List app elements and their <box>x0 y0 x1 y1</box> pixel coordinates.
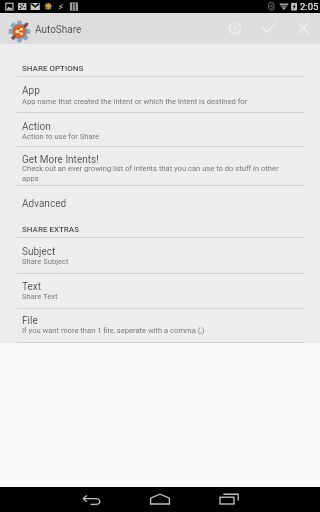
staticText: 2:05 <box>300 1 319 12</box>
staticText: Share Text <box>22 292 58 301</box>
button[interactable]: Home <box>136 487 184 512</box>
button[interactable]: Close <box>288 13 318 44</box>
button[interactable]: Action <box>0 113 320 146</box>
staticText: App <box>22 85 40 97</box>
staticText: Share Subject <box>22 257 69 266</box>
staticText: AutoShare <box>35 24 82 36</box>
staticText: File <box>22 315 38 327</box>
button[interactable]: App <box>0 77 320 112</box>
staticText: Check out an ever growing list of intent… <box>22 164 293 183</box>
staticText: App name that created the Intent or whic… <box>22 97 248 106</box>
staticText: Advanced <box>22 198 67 210</box>
staticText: SHARE OPTIONS <box>22 64 84 73</box>
button[interactable]: Info <box>220 13 250 44</box>
button[interactable]: File <box>0 309 320 342</box>
staticText: Get More Intents! <box>22 154 99 166</box>
staticText: Subject <box>22 246 56 258</box>
staticText: Action to use for Share <box>22 132 100 141</box>
staticText: If you want more than 1 file, seperate w… <box>22 326 205 335</box>
button[interactable]: Text <box>0 274 320 308</box>
button[interactable]: Recent apps <box>205 487 253 512</box>
staticText: SHARE EXTRAS <box>22 225 80 234</box>
button[interactable]: Back <box>67 487 115 512</box>
button[interactable]: Get More Intents! <box>0 147 320 185</box>
button[interactable]: Subject <box>0 238 320 273</box>
button[interactable]: Advanced <box>0 186 320 213</box>
staticText: Action <box>22 121 51 133</box>
staticText: Text <box>22 281 42 293</box>
